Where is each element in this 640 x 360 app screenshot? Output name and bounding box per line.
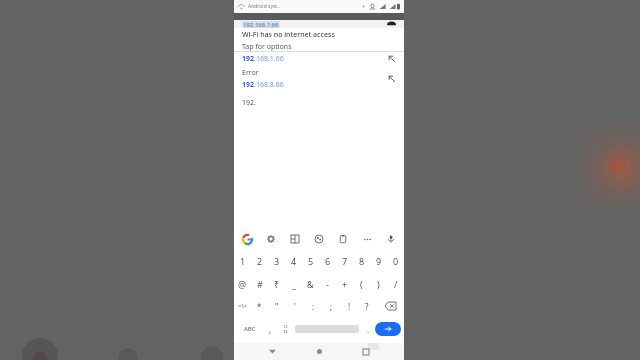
button[interactable]: Error [234,66,404,92]
button[interactable]: ? [358,295,376,317]
button[interactable]: ; [322,295,340,317]
button[interactable]: Stickers [312,232,326,246]
staticText: Tap for options [242,42,292,51]
button[interactable]: ABC [237,317,263,341]
button[interactable]: Number pad [277,317,293,341]
button[interactable]: _ [285,272,302,295]
button[interactable]: 0 [387,249,404,272]
staticText: ; [330,301,333,312]
button[interactable]: 1 [234,249,251,272]
button[interactable]: ! [340,295,358,317]
button[interactable]: More options [360,232,374,246]
button[interactable]: 9 [370,249,387,272]
button[interactable]: Insert suggestion [386,73,398,85]
button[interactable]: =\< [234,295,251,317]
button[interactable]: 2 [251,249,268,272]
staticText: 192.168.1.66 [242,54,284,64]
button[interactable]: 192.168.1.66 [234,52,404,66]
staticText: 7 [342,255,348,267]
staticText: 192. [242,98,256,108]
staticText: _ [292,278,296,290]
staticText: 9 [376,255,382,267]
staticText: 2 [257,255,263,267]
button[interactable]: , [263,317,277,341]
staticText: Wi-Fi has no internet access [242,30,335,40]
button[interactable]: ( [353,272,370,295]
button[interactable]: Enter [375,322,401,336]
button[interactable]: Wi-Fi has no internet access [234,28,404,51]
button[interactable]: 3 [268,249,285,272]
staticText: 5 [308,255,314,267]
staticText: ! [348,301,351,312]
staticText: Android syst.. [248,3,280,10]
button[interactable]: + [336,272,353,295]
staticText: + [342,278,348,290]
staticText: - [326,278,329,290]
button[interactable]: Translate [288,232,302,246]
button[interactable]: Settings [264,232,278,246]
staticText: # [257,278,263,290]
staticText: 34 [283,329,288,334]
staticText: " [275,301,279,312]
staticText: Error [242,68,259,78]
button[interactable]: 5 [302,249,319,272]
staticText: 1 [240,255,246,267]
button[interactable]: # [251,272,268,295]
staticText: / [394,278,398,290]
staticText: 4 [291,255,297,267]
staticText: , [269,324,272,335]
button[interactable]: ₹ [268,272,285,295]
staticText: 192.168.8.66 [242,80,284,90]
button[interactable]: Google Assistant [240,232,254,246]
button[interactable]: Recents [357,343,375,360]
button[interactable]: 7 [336,249,353,272]
staticText: ₹ [274,278,280,290]
staticText: 0 [393,255,399,267]
button[interactable]: ' [286,295,304,317]
staticText: . [367,324,370,335]
staticText: ABC [244,325,256,333]
button[interactable]: Voice input [384,232,398,246]
button[interactable]: 6 [319,249,336,272]
staticText: =\< [238,302,248,310]
button[interactable]: Backspace [376,295,404,317]
button[interactable]: 8 [353,249,370,272]
button[interactable]: Clipboard [336,232,350,246]
button[interactable]: Back [263,343,281,360]
button[interactable]: . [361,317,375,341]
staticText: 6 [325,255,331,267]
button[interactable]: Insert suggestion [386,53,398,65]
button[interactable]: & [302,272,319,295]
button[interactable]: * [251,295,268,317]
staticText: ) [377,278,380,290]
staticText: ' [294,301,296,312]
staticText: ( [360,278,363,290]
button[interactable]: / [387,272,404,295]
staticText: 12 [283,324,288,329]
staticText: 3 [274,255,280,267]
button[interactable]: : [304,295,322,317]
button[interactable]: " [268,295,286,317]
button[interactable]: @ [234,272,251,295]
staticText: 192.168.?.66 [243,21,279,28]
staticText: ? [365,301,369,312]
button[interactable]: Home [310,343,328,360]
staticText: : [312,301,315,312]
staticText: & [307,278,314,290]
staticText: 8 [359,255,365,267]
staticText: @ [238,278,247,290]
button[interactable]: - [319,272,336,295]
button[interactable]: 4 [285,249,302,272]
staticText: * [257,301,262,312]
button[interactable]: ) [370,272,387,295]
